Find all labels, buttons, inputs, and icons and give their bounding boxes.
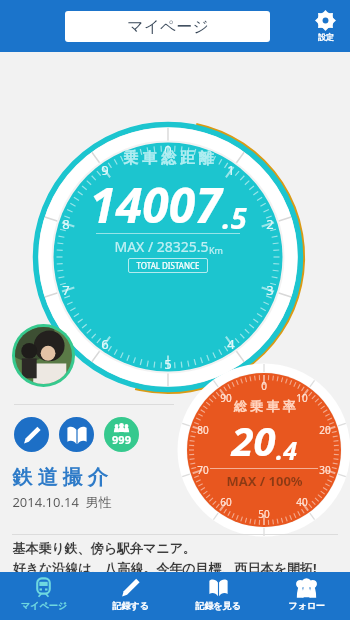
staticText: 〈西武鉄道〉〈西武線〉〈秩父〉〈特急レッドアロー号〉〈	[12, 590, 338, 605]
staticText: 30	[319, 463, 331, 477]
staticText: 6	[101, 335, 109, 353]
button[interactable]: 設定	[313, 8, 338, 44]
button[interactable]: 記録を見る	[174, 572, 262, 620]
staticText: 乗 車 総 距 離	[123, 147, 214, 167]
staticText: 設定	[318, 32, 334, 42]
staticText: 7	[62, 281, 70, 299]
staticText: 50	[258, 507, 270, 521]
button[interactable]: プロフィール写真	[12, 324, 75, 387]
staticText: 70	[197, 463, 209, 477]
staticText: 20	[231, 413, 276, 467]
staticText: 14007	[89, 172, 222, 237]
staticText: フォロー	[288, 600, 325, 611]
staticText: 記録を見る	[195, 600, 241, 611]
button[interactable]: フォロワー 999	[104, 417, 139, 452]
staticText: MAX / 100%	[226, 472, 303, 490]
staticText: マイページ	[21, 600, 67, 611]
staticText: 0	[164, 141, 172, 159]
button[interactable]: 記録する	[87, 572, 174, 620]
staticText: 3	[266, 281, 274, 299]
staticText: マイページ	[127, 17, 209, 37]
staticText: 1	[227, 161, 235, 179]
staticText: 基本乗り鉄、傍ら駅弁マニア。	[12, 540, 196, 556]
staticText: 40	[296, 495, 308, 509]
staticText: 4	[227, 335, 235, 353]
staticText: 0	[261, 379, 267, 393]
staticText: 5	[164, 355, 172, 373]
staticText: 鉄 道 撮 介	[12, 463, 108, 490]
staticText: .4	[276, 433, 297, 467]
staticText: 10	[296, 391, 308, 405]
button[interactable]: 編集	[14, 417, 49, 452]
staticText: 8	[62, 215, 70, 233]
staticText: TOTAL DISTANCE	[136, 260, 200, 271]
button[interactable]: マイページ	[0, 572, 87, 620]
staticText: Km	[209, 244, 223, 256]
staticText: MAX / 28325.5	[114, 237, 209, 256]
staticText: 20	[319, 423, 331, 437]
staticText: 鉄道研究会〉〈八高線〉〈八王子〉〈高崎〉〈駅弁〉〈各駅〉	[12, 607, 348, 620]
button[interactable]: フォロー	[262, 572, 350, 620]
staticText: 90	[220, 391, 232, 405]
staticText: 2	[266, 215, 274, 233]
staticText: 999	[112, 432, 131, 447]
staticText: 60	[220, 495, 232, 509]
staticText: 記録する	[112, 600, 149, 611]
staticText: .5	[222, 198, 247, 237]
button[interactable]: 記録を見る	[59, 417, 94, 452]
button[interactable]: マイページ	[65, 11, 270, 42]
staticText: 好きな沿線は、八高線。今年の目標、西日本を開拓!	[12, 559, 317, 577]
staticText: 総 乗 車 率	[233, 397, 296, 415]
staticText: 2014.10.14 男性	[12, 493, 112, 511]
staticText: 9	[101, 161, 109, 179]
staticText: 80	[197, 423, 209, 437]
